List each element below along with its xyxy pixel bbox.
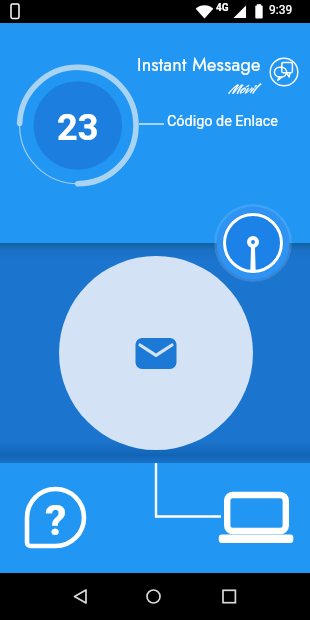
staticText: 4G [216, 2, 229, 14]
button[interactable]: Link code [213, 203, 293, 283]
staticText: Instant Message [137, 52, 261, 78]
staticText: ? [45, 495, 67, 545]
button[interactable]: Home [130, 573, 177, 620]
button[interactable]: Back [57, 573, 104, 620]
staticText: Móvil [228, 81, 255, 98]
staticText: Código de Enlace [167, 113, 278, 130]
button[interactable]: Computer [218, 486, 298, 546]
staticText: 9:39 [269, 3, 293, 17]
button[interactable]: Help [24, 487, 87, 550]
button[interactable]: Countdown 23 seconds [14, 62, 142, 190]
button[interactable]: Recent apps [206, 573, 253, 620]
button[interactable]: Send message [59, 256, 253, 450]
button[interactable]: Instant Message logo [269, 57, 299, 87]
staticText: 23 [57, 107, 99, 149]
